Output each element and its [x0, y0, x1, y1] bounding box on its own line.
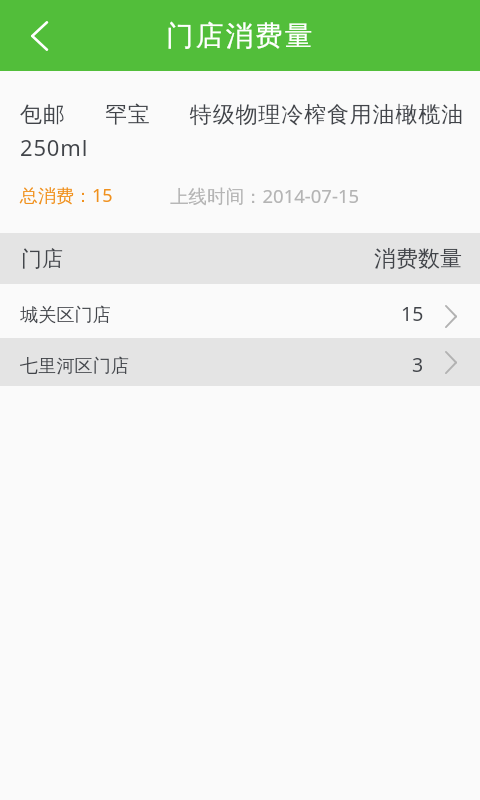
staticText: 七里河区门店 — [20, 354, 130, 377]
staticText: 总消费：15 — [20, 183, 113, 208]
staticText: 上线时间：2014-07-15 — [170, 183, 360, 208]
button[interactable]: 七里河区门店 — [0, 338, 480, 386]
staticText: 门店消费量 — [166, 19, 315, 54]
staticText: 城关区门店 — [20, 303, 111, 326]
staticText: 15 — [401, 300, 424, 327]
staticText: 消费数量 — [374, 245, 462, 273]
staticText: 3 — [412, 351, 424, 378]
staticText: 门店 — [21, 246, 63, 272]
button[interactable]: 城关区门店 — [0, 284, 480, 338]
staticText: 包邮 罕宝 特级物理冷榨食用油橄榄油250ml — [20, 98, 474, 162]
button[interactable]: Back — [0, 0, 72, 71]
